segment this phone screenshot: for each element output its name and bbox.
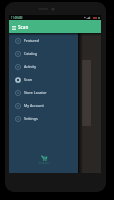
staticText: shopper [38,161,50,165]
staticText: 11:08 AM [11,16,23,20]
button[interactable]: Scan [9,73,78,86]
staticText: Activity [24,64,37,69]
staticText: Scan [18,24,29,30]
button[interactable]: Settings [9,112,78,125]
staticText: My Account [24,103,44,108]
button[interactable]: My Account [9,99,78,112]
button[interactable]: Store Locator [9,86,78,99]
staticText: Scan [24,77,32,82]
button[interactable]: Open navigation drawer [10,24,17,31]
button[interactable]: Activity [9,60,78,73]
staticText: Settings [24,116,38,121]
button[interactable]: Catalog [9,47,78,60]
button[interactable]: Featured [9,34,78,47]
staticText: Catalog [24,51,37,56]
staticText: Featured [24,38,40,43]
staticText: Store Locator [24,90,47,95]
